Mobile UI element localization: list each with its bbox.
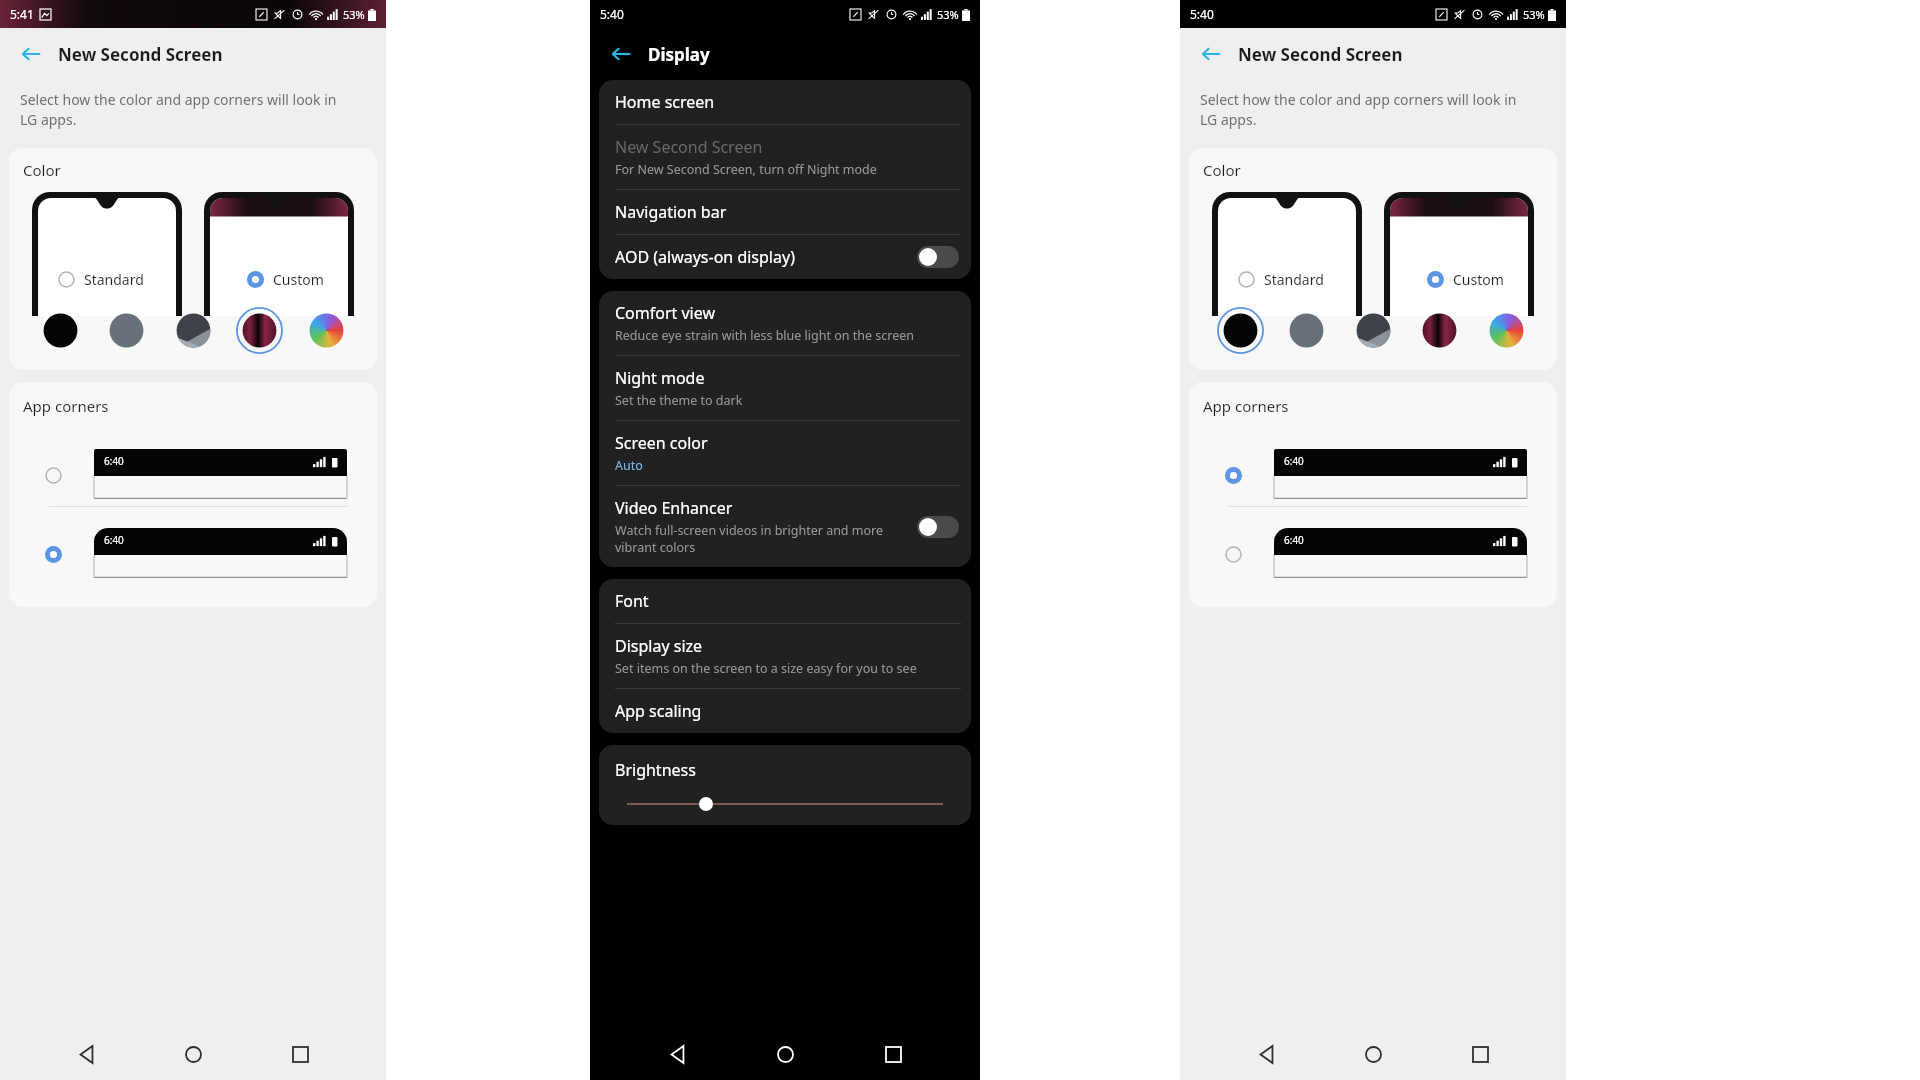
- button[interactable]: Home: [172, 1033, 214, 1075]
- button[interactable]: Font: [599, 579, 971, 623]
- staticText: Select how the color and app corners wil…: [1200, 90, 1517, 130]
- button[interactable]: Color option 2: [103, 307, 150, 354]
- staticText: Watch full-screen videos in brighter and…: [615, 522, 884, 556]
- button[interactable]: Color option 1: [1217, 307, 1264, 354]
- staticText: Color: [23, 160, 61, 180]
- button[interactable]: Standard: [1234, 266, 1328, 293]
- button[interactable]: Back: [1180, 28, 1566, 80]
- button[interactable]: [1212, 192, 1362, 254]
- button[interactable]: Custom: [243, 266, 328, 293]
- button[interactable]: Recents: [279, 1033, 321, 1075]
- staticText: Set the theme to dark: [615, 392, 743, 409]
- staticText: Home screen: [615, 91, 715, 113]
- staticText: 6:40: [1284, 454, 1304, 468]
- staticText: Custom: [273, 270, 324, 289]
- staticText: New Second Screen: [615, 136, 763, 158]
- button[interactable]: Home screen: [599, 80, 971, 124]
- button[interactable]: AOD (always-on display): [599, 235, 971, 279]
- button[interactable]: Back: [1198, 41, 1224, 67]
- staticText: Comfort view: [615, 302, 716, 324]
- staticText: 5:41: [10, 6, 34, 22]
- button[interactable]: New Second Screen: [599, 125, 971, 189]
- button[interactable]: Color option 5: [1483, 307, 1530, 354]
- staticText: Set items on the screen to a size easy f…: [615, 660, 917, 677]
- staticText: Font: [615, 590, 649, 612]
- button[interactable]: Comfort view: [599, 291, 971, 355]
- button[interactable]: Color option 2: [1283, 307, 1330, 354]
- staticText: Brightness: [615, 759, 696, 781]
- button[interactable]: Home: [1352, 1033, 1394, 1075]
- button[interactable]: 6:40: [9, 444, 377, 506]
- staticText: App scaling: [615, 700, 702, 722]
- button[interactable]: 6:40: [1189, 444, 1557, 506]
- button[interactable]: Navigation bar: [599, 190, 971, 234]
- staticText: 53%: [1523, 7, 1545, 22]
- button[interactable]: Color option 3: [170, 307, 217, 354]
- button[interactable]: Back: [608, 41, 634, 67]
- button[interactable]: [1384, 192, 1534, 254]
- staticText: Video Enhancer: [615, 497, 733, 519]
- button[interactable]: [204, 192, 354, 254]
- button[interactable]: Color option 4: [236, 307, 283, 354]
- staticText: Standard: [84, 270, 144, 289]
- staticText: New Second Screen: [58, 43, 223, 66]
- staticText: Display size: [615, 635, 703, 657]
- button[interactable]: 6:40: [1189, 523, 1557, 585]
- button[interactable]: Display size: [599, 624, 971, 688]
- button[interactable]: AOD (always-on display) toggle: [917, 246, 959, 268]
- button[interactable]: Screen color: [599, 421, 971, 485]
- button[interactable]: Night mode: [599, 356, 971, 420]
- button[interactable]: Standard: [54, 266, 148, 293]
- button[interactable]: App scaling: [599, 689, 971, 733]
- button[interactable]: Back: [18, 41, 44, 67]
- button[interactable]: Color option 1: [37, 307, 84, 354]
- button[interactable]: Brightness: [599, 745, 971, 825]
- staticText: For New Second Screen, turn off Night mo…: [615, 161, 877, 178]
- button[interactable]: Color option 5: [303, 307, 350, 354]
- button[interactable]: Color option 4: [1416, 307, 1463, 354]
- staticText: 6:40: [104, 454, 124, 468]
- button[interactable]: 6:40: [9, 523, 377, 585]
- staticText: 6:40: [1284, 533, 1304, 547]
- staticText: Custom: [1453, 270, 1504, 289]
- staticText: Night mode: [615, 367, 705, 389]
- staticText: 5:40: [600, 6, 624, 22]
- button[interactable]: Color option 3: [1350, 307, 1397, 354]
- staticText: 6:40: [104, 533, 124, 547]
- button[interactable]: [32, 192, 182, 254]
- button[interactable]: Back: [590, 28, 980, 80]
- staticText: Color: [1203, 160, 1241, 180]
- staticText: App corners: [1203, 396, 1289, 416]
- button[interactable]: Back: [656, 1033, 698, 1075]
- staticText: App corners: [23, 396, 109, 416]
- staticText: New Second Screen: [1238, 43, 1403, 66]
- button[interactable]: Custom: [1423, 266, 1508, 293]
- staticText: AOD (always-on display): [615, 246, 795, 268]
- staticText: Auto: [615, 457, 643, 474]
- button[interactable]: Back: [1245, 1033, 1287, 1075]
- button[interactable]: Video Enhancer toggle: [917, 516, 959, 538]
- button[interactable]: Home: [764, 1033, 806, 1075]
- staticText: Navigation bar: [615, 201, 727, 223]
- staticText: Screen color: [615, 432, 708, 454]
- button[interactable]: Recents: [872, 1033, 914, 1075]
- staticText: 53%: [343, 7, 365, 22]
- staticText: Standard: [1264, 270, 1324, 289]
- staticText: Display: [648, 43, 710, 66]
- button[interactable]: Recents: [1459, 1033, 1501, 1075]
- staticText: 5:40: [1190, 6, 1214, 22]
- button[interactable]: Video Enhancer: [599, 486, 971, 567]
- staticText: 53%: [937, 7, 959, 22]
- staticText: Select how the color and app corners wil…: [20, 90, 337, 130]
- staticText: Reduce eye strain with less blue light o…: [615, 327, 915, 344]
- button[interactable]: Back: [65, 1033, 107, 1075]
- button[interactable]: Back: [0, 28, 386, 80]
